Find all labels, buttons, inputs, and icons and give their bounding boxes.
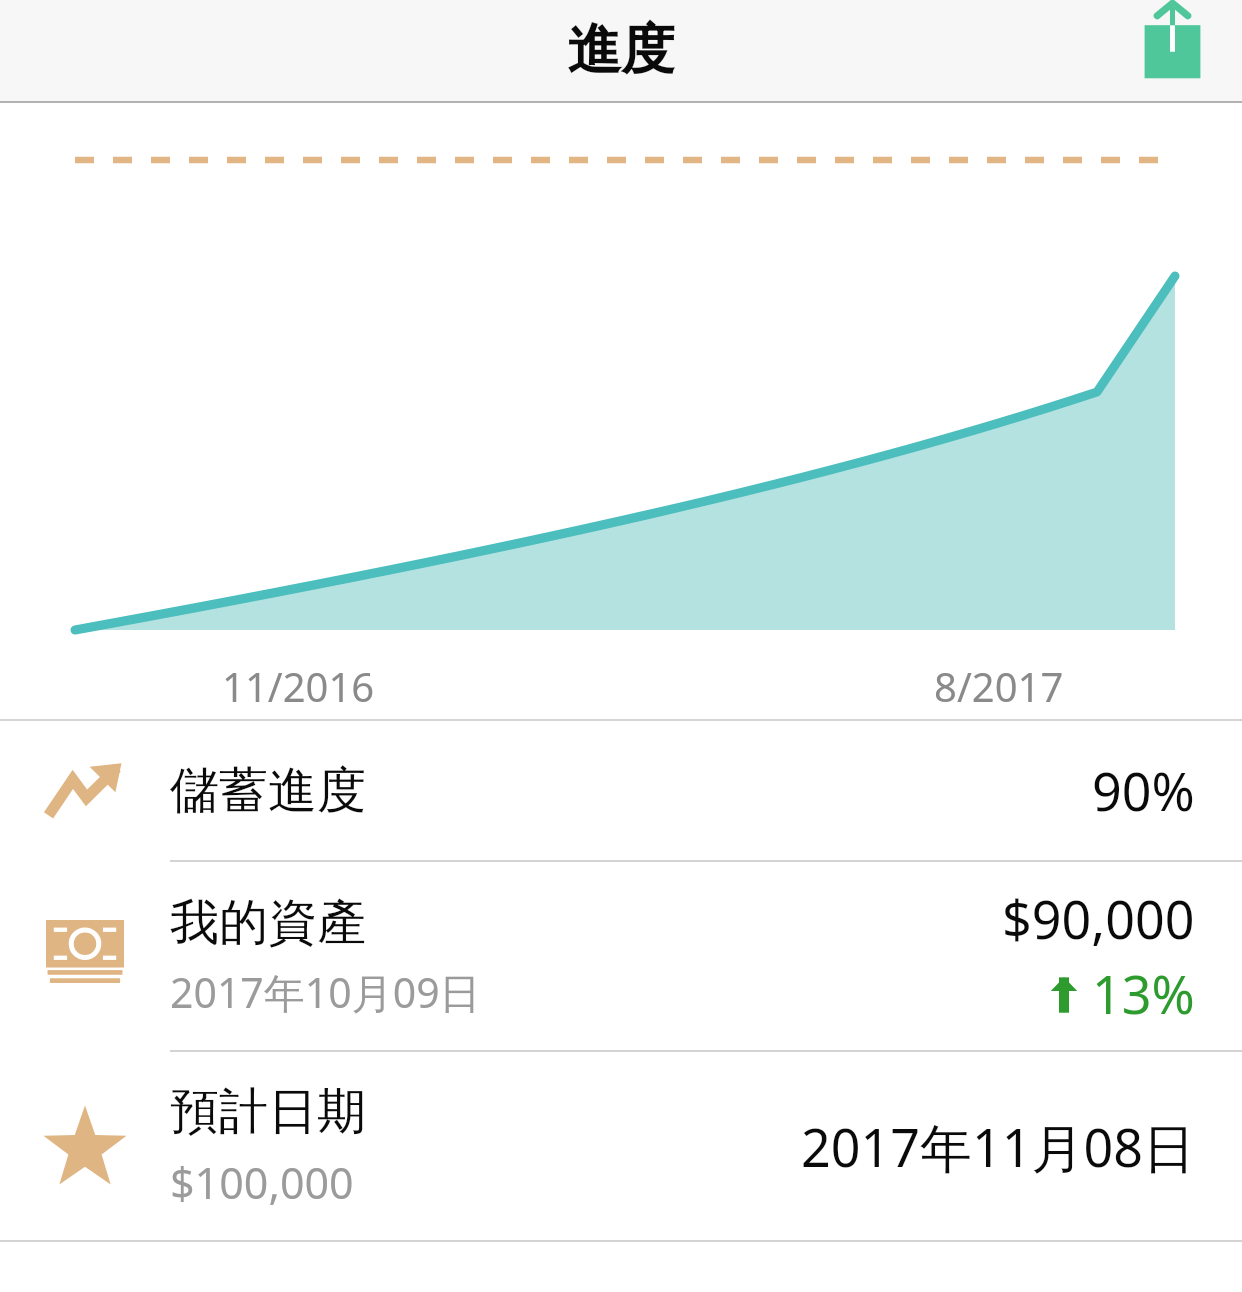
staticText: $90,000: [1002, 883, 1195, 954]
staticText: 90%: [1092, 755, 1195, 826]
staticText: $100,000: [170, 1153, 354, 1212]
staticText: 我的資產: [170, 892, 366, 954]
button[interactable]: 儲蓄進度: [0, 721, 1242, 860]
button[interactable]: 預計日期: [0, 1052, 1242, 1240]
staticText: 13%: [1092, 958, 1195, 1029]
staticText: 8/2017: [934, 659, 1064, 713]
staticText: 11/2016: [222, 659, 375, 713]
staticText: 預計日期: [170, 1081, 366, 1143]
button[interactable]: 我的資產: [0, 862, 1242, 1050]
button[interactable]: Share: [1132, 0, 1222, 90]
staticText: 儲蓄進度: [170, 760, 366, 822]
staticText: 2017年11月08日: [801, 1111, 1195, 1182]
staticText: 進度: [567, 16, 675, 84]
staticText: 2017年10月09日: [170, 964, 481, 1020]
